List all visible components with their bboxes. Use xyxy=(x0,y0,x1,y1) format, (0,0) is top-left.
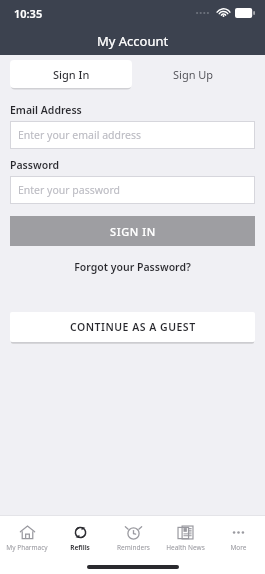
button[interactable]: Health News xyxy=(159,524,211,552)
button[interactable]: Refills xyxy=(54,524,106,552)
staticText: Reminders xyxy=(117,543,150,552)
staticText: My Pharmacy xyxy=(6,543,48,552)
staticText: Enter your password xyxy=(18,183,120,197)
staticText: Email Address xyxy=(10,103,82,117)
staticText: SIGN IN xyxy=(110,224,156,239)
button[interactable]: SIGN IN xyxy=(10,216,255,246)
button[interactable]: Sign In xyxy=(10,60,132,88)
staticText: More xyxy=(230,543,247,552)
button[interactable]: My Pharmacy xyxy=(1,524,53,552)
button[interactable]: Enter your email address xyxy=(18,121,247,149)
staticText: Refills xyxy=(70,543,90,552)
staticText: Sign Up xyxy=(173,67,214,82)
button[interactable]: Enter your password xyxy=(18,176,247,204)
button[interactable]: Forgot your Password? xyxy=(10,260,255,274)
staticText: 10:35 xyxy=(14,6,43,21)
staticText: Enter your email address xyxy=(18,128,142,142)
staticText: CONTINUE AS A GUEST xyxy=(70,320,196,334)
staticText: Health News xyxy=(166,543,205,552)
staticText: My Account xyxy=(97,32,169,50)
staticText: Sign In xyxy=(53,67,90,82)
button[interactable]: Reminders xyxy=(107,524,159,552)
staticText: Password xyxy=(10,158,60,172)
button[interactable]: More xyxy=(212,524,264,552)
button[interactable]: Sign Up xyxy=(132,60,255,88)
staticText: Forgot your Password? xyxy=(74,260,191,274)
button[interactable]: CONTINUE AS A GUEST xyxy=(10,312,255,342)
